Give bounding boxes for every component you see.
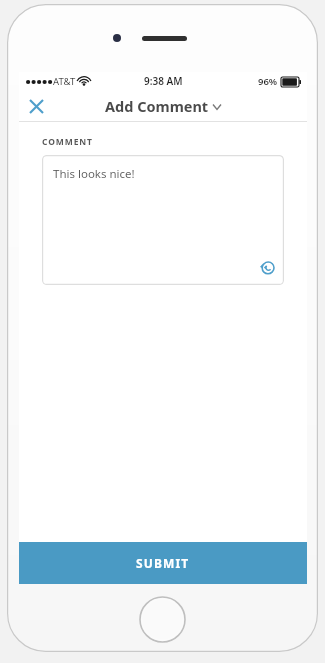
button[interactable]: This looks nice! <box>42 155 284 285</box>
staticText: 96% <box>258 75 278 88</box>
staticText: 9:38 AM <box>144 74 183 88</box>
button[interactable]: Attach file <box>251 252 284 285</box>
staticText: SUBMIT <box>136 555 190 571</box>
button[interactable]: SUBMIT <box>19 542 307 584</box>
staticText: This looks nice! <box>53 166 135 182</box>
staticText: Add Comment <box>105 96 209 116</box>
button[interactable]: Add Comment <box>105 96 221 116</box>
staticText: AT&T <box>53 75 76 88</box>
button[interactable]: Close <box>19 90 53 122</box>
staticText: COMMENT <box>42 136 93 148</box>
